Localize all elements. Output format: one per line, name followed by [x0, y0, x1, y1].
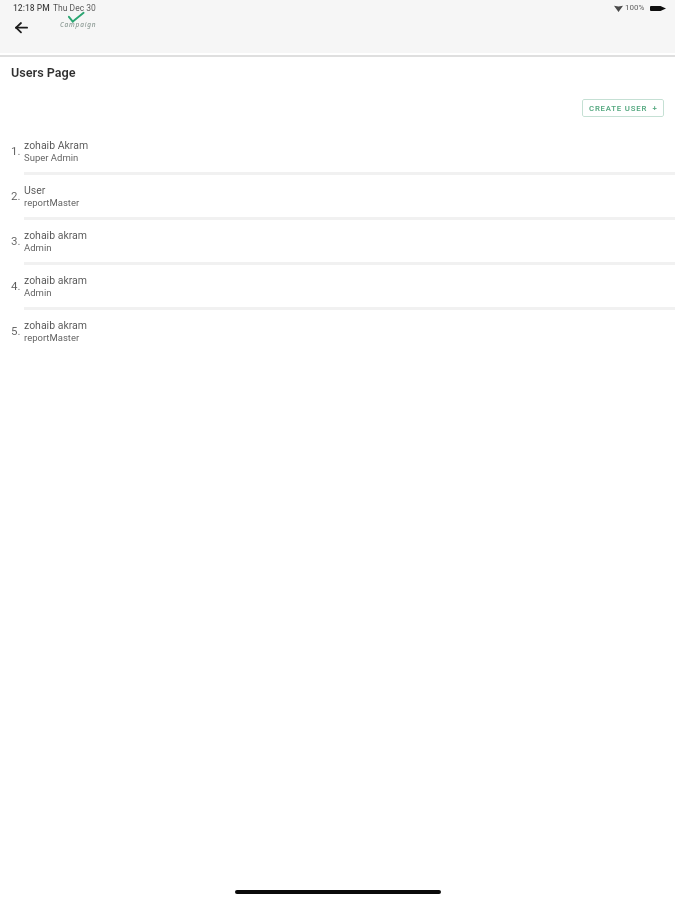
staticText: 5.	[11, 324, 21, 337]
button[interactable]: 1.	[0, 128, 675, 173]
staticText: 100%	[625, 3, 645, 12]
staticText: 4.	[11, 279, 21, 292]
staticText: zohaib akram	[24, 274, 87, 286]
staticText: reportMaster	[24, 197, 80, 208]
button[interactable]: Campaign logo	[58, 11, 100, 33]
staticText: CREATE USER +	[589, 104, 658, 113]
staticText: Users Page	[11, 65, 76, 80]
button[interactable]: 3.	[0, 218, 675, 263]
button[interactable]: 5.	[0, 308, 675, 353]
staticText: Campaign	[60, 20, 97, 29]
staticText: 3.	[11, 234, 21, 247]
staticText: 1.	[11, 144, 21, 157]
staticText: Super Admin	[24, 152, 79, 163]
staticText: Thu Dec 30	[53, 3, 96, 13]
staticText: zohaib akram	[24, 319, 87, 331]
staticText: Admin	[24, 287, 52, 298]
staticText: 2.	[11, 189, 21, 202]
staticText: 12:18 PM	[13, 3, 50, 13]
button[interactable]: Back	[10, 20, 32, 36]
button[interactable]: 2.	[0, 173, 675, 218]
staticText: Admin	[24, 242, 52, 253]
button[interactable]: 4.	[0, 263, 675, 308]
button[interactable]: CREATE USER +	[582, 99, 664, 117]
staticText: zohaib akram	[24, 229, 87, 241]
staticText: User	[24, 184, 46, 196]
staticText: reportMaster	[24, 332, 80, 343]
staticText: zohaib Akram	[24, 139, 89, 151]
